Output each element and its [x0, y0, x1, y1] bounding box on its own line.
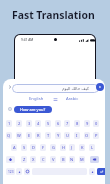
staticText: W: [17, 133, 21, 138]
button[interactable]: Backspace: [90, 156, 99, 163]
button[interactable]: Settings: [6, 105, 13, 112]
staticText: G: [52, 145, 55, 150]
staticText: 3: [28, 121, 31, 126]
staticText: C: [42, 157, 45, 162]
staticText: 0: [95, 121, 98, 126]
staticText: Z: [23, 157, 26, 162]
staticText: 7: [66, 121, 69, 126]
button[interactable]: 3: [26, 120, 32, 127]
button[interactable]: 123: [6, 168, 15, 175]
staticText: Q: [7, 133, 11, 138]
button[interactable]: Return: [97, 168, 105, 175]
button[interactable]: W: [16, 132, 22, 139]
staticText: U: [66, 133, 69, 138]
button[interactable]: C: [40, 156, 46, 163]
button[interactable]: Q: [6, 132, 12, 139]
staticText: 6: [57, 121, 60, 126]
staticText: H: [62, 145, 65, 150]
staticText: P: [95, 133, 98, 138]
staticText: V: [52, 157, 55, 162]
button[interactable]: How are you?: [14, 106, 52, 113]
button[interactable]: 1: [6, 120, 12, 127]
button[interactable]: G: [50, 144, 56, 151]
button[interactable]: K: [79, 144, 85, 151]
staticText: T: [47, 133, 50, 138]
button[interactable]: 9: [84, 120, 90, 127]
staticText: 5: [47, 121, 50, 126]
staticText: B: [62, 157, 65, 162]
button[interactable]: Z: [21, 156, 27, 163]
button[interactable]: D: [30, 144, 36, 151]
staticText: 9:41 AM: [21, 38, 34, 42]
staticText: F: [42, 145, 45, 150]
button[interactable]: M: [79, 156, 85, 163]
button[interactable]: V: [50, 156, 56, 163]
button[interactable]: Comma: [16, 168, 22, 175]
staticText: Arabic: [66, 96, 79, 102]
button[interactable]: H: [60, 144, 66, 151]
button[interactable]: 2: [16, 120, 22, 127]
button[interactable]: N: [69, 156, 75, 163]
button[interactable]: S: [21, 144, 27, 151]
button[interactable]: 4: [35, 120, 41, 127]
button[interactable]: 5: [45, 120, 51, 127]
staticText: N: [70, 157, 74, 162]
button[interactable]: Arabic: [64, 96, 81, 102]
button[interactable]: English: [27, 96, 46, 102]
button[interactable]: P: [93, 132, 99, 139]
staticText: X: [32, 157, 35, 162]
button[interactable]: R: [35, 132, 41, 139]
button[interactable]: Expand: [6, 83, 14, 91]
staticText: I: [76, 133, 78, 138]
staticText: E: [28, 133, 31, 138]
button[interactable]: O: [84, 132, 90, 139]
staticText: M: [80, 157, 84, 162]
staticText: 4: [37, 121, 40, 126]
staticText: Fast Translation: [12, 8, 95, 22]
button[interactable]: كيف حالك اليوم: [12, 84, 99, 93]
button[interactable]: Period: [89, 168, 95, 175]
button[interactable]: L: [89, 144, 95, 151]
staticText: 2: [18, 121, 21, 126]
button[interactable]: J: [69, 144, 75, 151]
button[interactable]: T: [45, 132, 51, 139]
staticText: English: [29, 96, 44, 102]
button[interactable]: Y: [55, 132, 61, 139]
button[interactable]: Swap languages: [52, 96, 58, 102]
staticText: O: [85, 133, 89, 138]
button[interactable]: A: [11, 144, 17, 151]
button[interactable]: 8: [74, 120, 80, 127]
staticText: كيف حالك اليوم: [62, 86, 89, 92]
button[interactable]: F: [40, 144, 46, 151]
button[interactable]: Send: [96, 83, 104, 91]
staticText: 8: [76, 121, 79, 126]
button[interactable]: 0: [93, 120, 99, 127]
staticText: How are you?: [20, 107, 46, 112]
button[interactable]: X: [30, 156, 36, 163]
staticText: S: [23, 145, 26, 150]
staticText: K: [81, 145, 84, 150]
button[interactable]: U: [64, 132, 70, 139]
staticText: D: [32, 145, 35, 150]
button[interactable]: Shift: [6, 156, 15, 163]
button[interactable]: 6: [55, 120, 61, 127]
button[interactable]: B: [60, 156, 66, 163]
staticText: 123: [8, 170, 14, 174]
staticText: 9: [86, 121, 89, 126]
staticText: R: [37, 133, 40, 138]
staticText: 1: [8, 121, 11, 126]
button[interactable]: 7: [64, 120, 70, 127]
staticText: A: [13, 145, 16, 150]
button[interactable]: E: [26, 132, 32, 139]
staticText: J: [71, 145, 73, 150]
button[interactable]: Emoji: [24, 168, 30, 175]
button[interactable]: I: [74, 132, 80, 139]
staticText: Y: [57, 133, 60, 138]
staticText: L: [91, 145, 94, 150]
